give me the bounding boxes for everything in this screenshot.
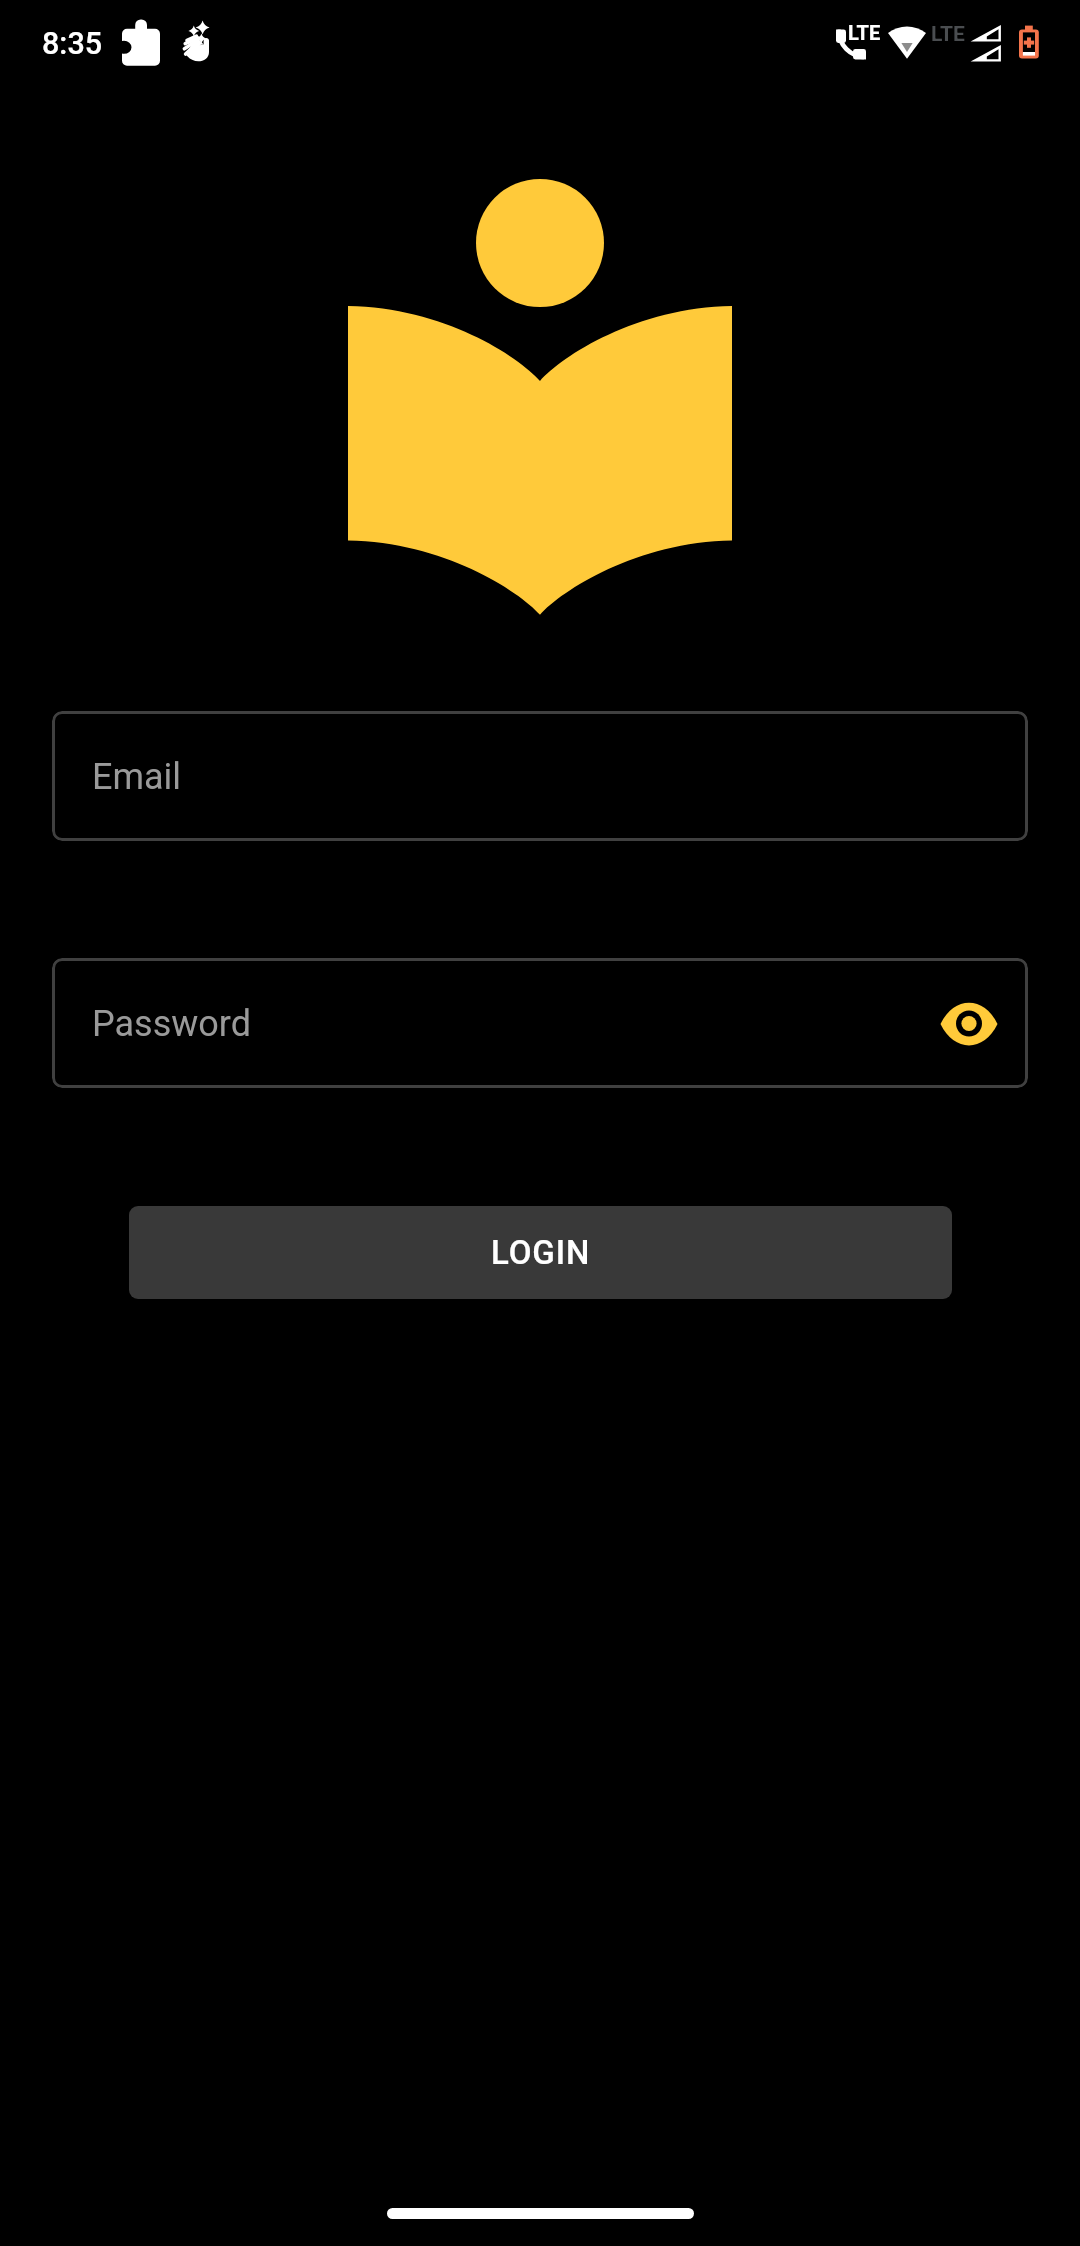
button[interactable]: Password [52, 958, 1028, 1088]
button[interactable]: LOGIN [129, 1206, 952, 1299]
staticText: 8:35 [42, 26, 103, 62]
staticText: LOGIN [491, 1233, 591, 1272]
staticText: Password [92, 1003, 252, 1045]
staticText: Email [92, 756, 182, 798]
staticText: LTE [848, 21, 881, 44]
staticText: LTE [931, 22, 965, 47]
button[interactable]: Email [52, 711, 1028, 841]
button[interactable]: Show password [921, 976, 1017, 1072]
